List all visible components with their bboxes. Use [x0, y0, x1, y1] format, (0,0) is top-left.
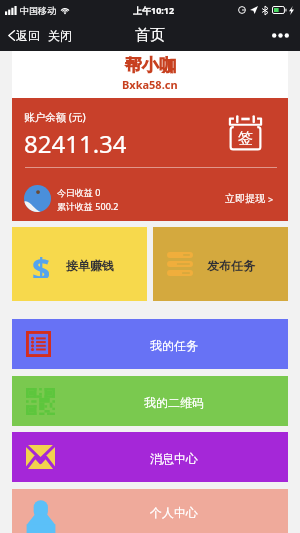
staticText: 立即提现 — [225, 192, 265, 205]
button[interactable]: 账户余额 (元) — [12, 98, 288, 221]
staticText: 个人中心 — [150, 505, 198, 520]
staticText: 接单赚钱 — [66, 258, 114, 273]
staticText: 今日收益 0 — [57, 186, 101, 198]
button[interactable]: 关闭 — [46, 23, 74, 48]
staticText: 帮小咖 — [125, 55, 176, 76]
staticText: 82411.34 — [24, 127, 127, 160]
button[interactable]: 我的二维码 — [12, 376, 288, 426]
staticText: 累计收益 500.2 — [57, 200, 119, 212]
staticText: 关闭 — [48, 28, 72, 43]
staticText: 中国移动 — [20, 5, 56, 16]
staticText: 上午10:12 — [133, 4, 175, 16]
button[interactable]: 我的任务 — [12, 319, 288, 369]
button[interactable]: 返回 — [6, 23, 42, 48]
button[interactable]: 消息中心 — [12, 432, 288, 482]
button[interactable]: 发布任务 — [153, 227, 288, 301]
staticText: > — [268, 193, 274, 205]
staticText: 签 — [238, 129, 253, 148]
button[interactable]: More options — [266, 27, 300, 44]
staticText: $ — [32, 248, 49, 278]
staticText: 消息中心 — [150, 451, 198, 466]
staticText: 返回 — [16, 28, 40, 43]
staticText: 我的任务 — [150, 338, 198, 353]
staticText: 发布任务 — [207, 258, 255, 273]
staticText: Bxka58.cn — [122, 77, 178, 92]
staticText: 首页 — [135, 26, 165, 45]
button[interactable]: 立即提现 — [223, 188, 276, 209]
staticText: 我的二维码 — [144, 395, 204, 410]
button[interactable]: 个人中心 — [12, 489, 288, 533]
staticText: 账户余额 (元) — [24, 110, 86, 124]
button[interactable]: $ — [12, 227, 147, 301]
